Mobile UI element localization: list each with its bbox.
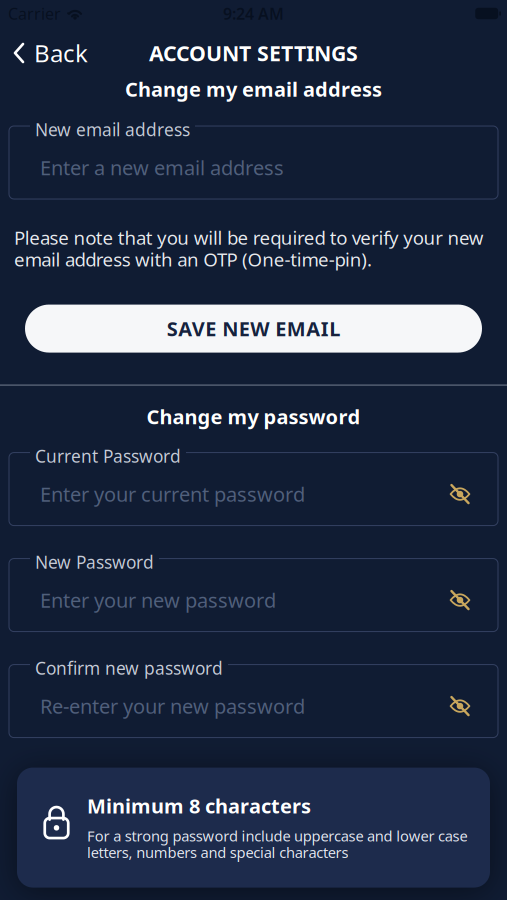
staticText: Minimum 8 characters	[87, 793, 311, 819]
staticText: SAVE NEW EMAIL	[167, 315, 340, 342]
button[interactable]: SAVE NEW EMAIL	[25, 305, 482, 353]
staticText: 9:24 AM	[223, 3, 284, 24]
staticText: Change my password	[146, 403, 360, 430]
staticText: Enter a new email address	[40, 154, 284, 181]
staticText: Enter your new password	[40, 587, 276, 613]
staticText: New Password	[35, 551, 154, 574]
button[interactable]: Show password	[449, 485, 471, 503]
staticText: For a strong password include uppercase …	[87, 826, 467, 862]
staticText: Re-enter your new password	[40, 693, 305, 719]
button[interactable]: Show password	[449, 591, 471, 609]
staticText: Change my email address	[125, 76, 382, 102]
staticText: Carrier	[8, 3, 61, 24]
button[interactable]: Show password	[449, 697, 471, 715]
staticText: Enter your current password	[40, 481, 305, 507]
button[interactable]: Back	[0, 37, 88, 69]
staticText: Confirm new password	[35, 657, 223, 680]
staticText: Please note that you will be required to…	[14, 225, 484, 272]
staticText: New email address	[35, 118, 190, 141]
staticText: ACCOUNT SETTINGS	[149, 39, 358, 67]
staticText: Back	[34, 37, 88, 69]
staticText: Current Password	[35, 445, 181, 468]
